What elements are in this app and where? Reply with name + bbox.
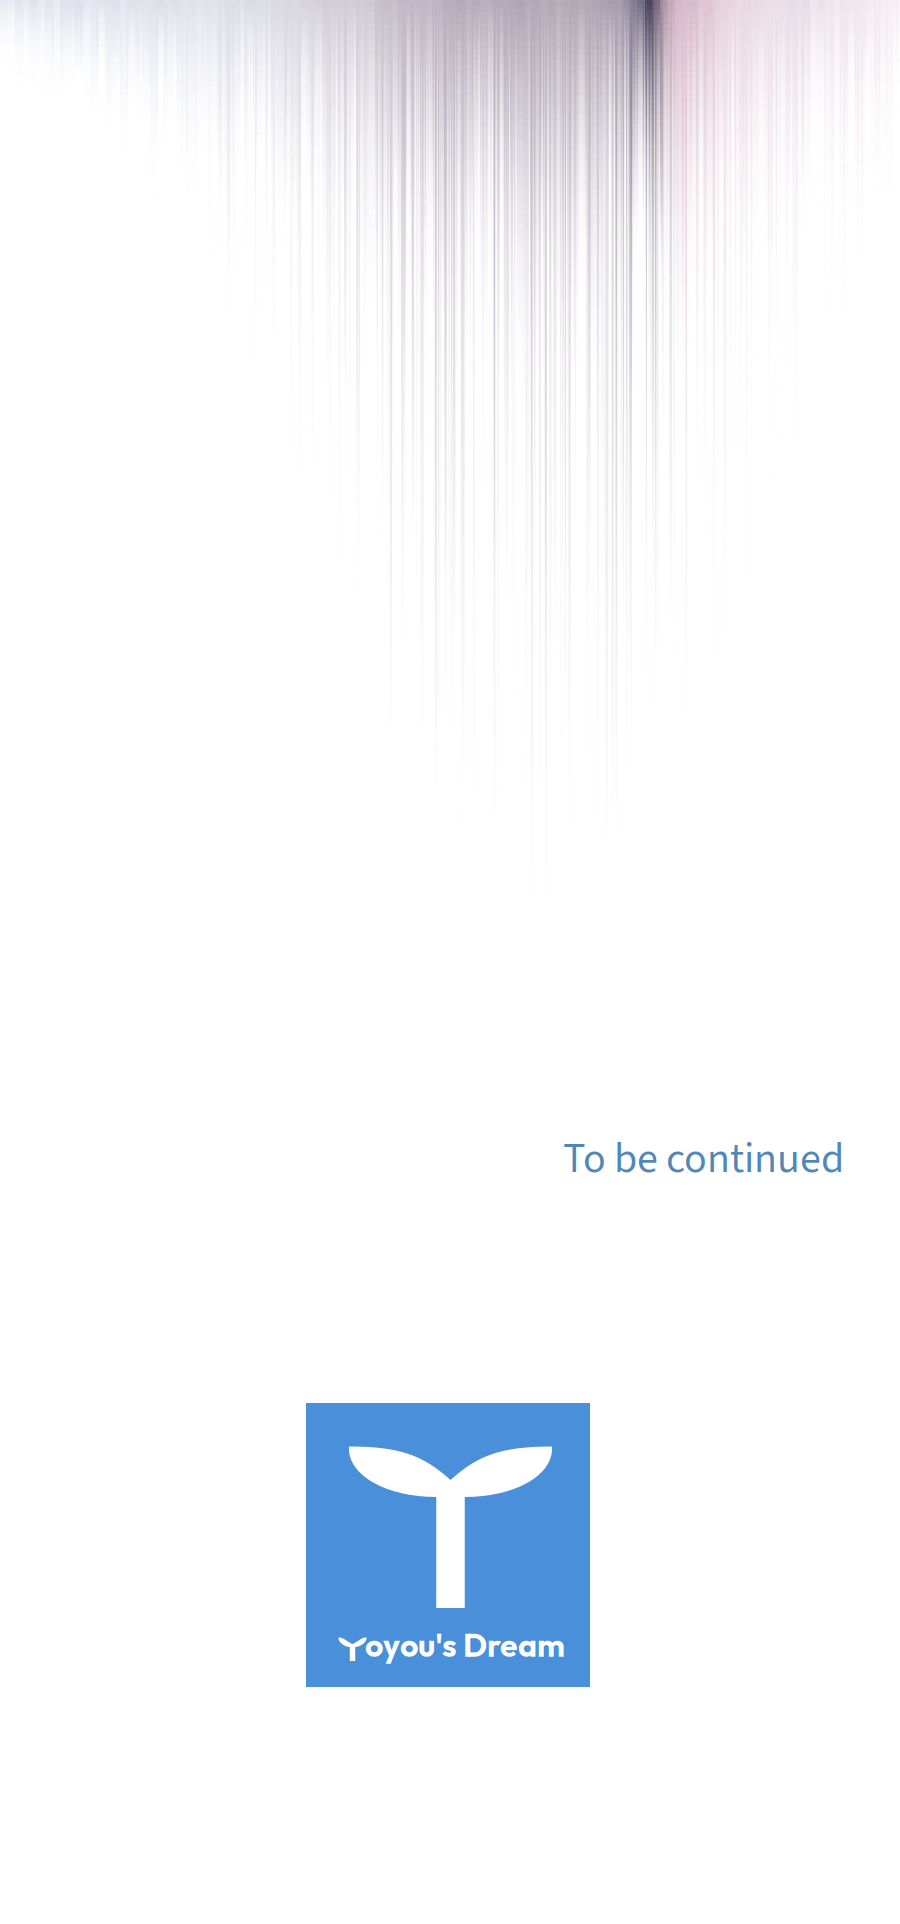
button[interactable]: Toyou's Dream bbox=[306, 1403, 590, 1687]
staticText: To be continued bbox=[563, 1129, 844, 1189]
staticText: oyou's Dream bbox=[365, 1625, 565, 1665]
